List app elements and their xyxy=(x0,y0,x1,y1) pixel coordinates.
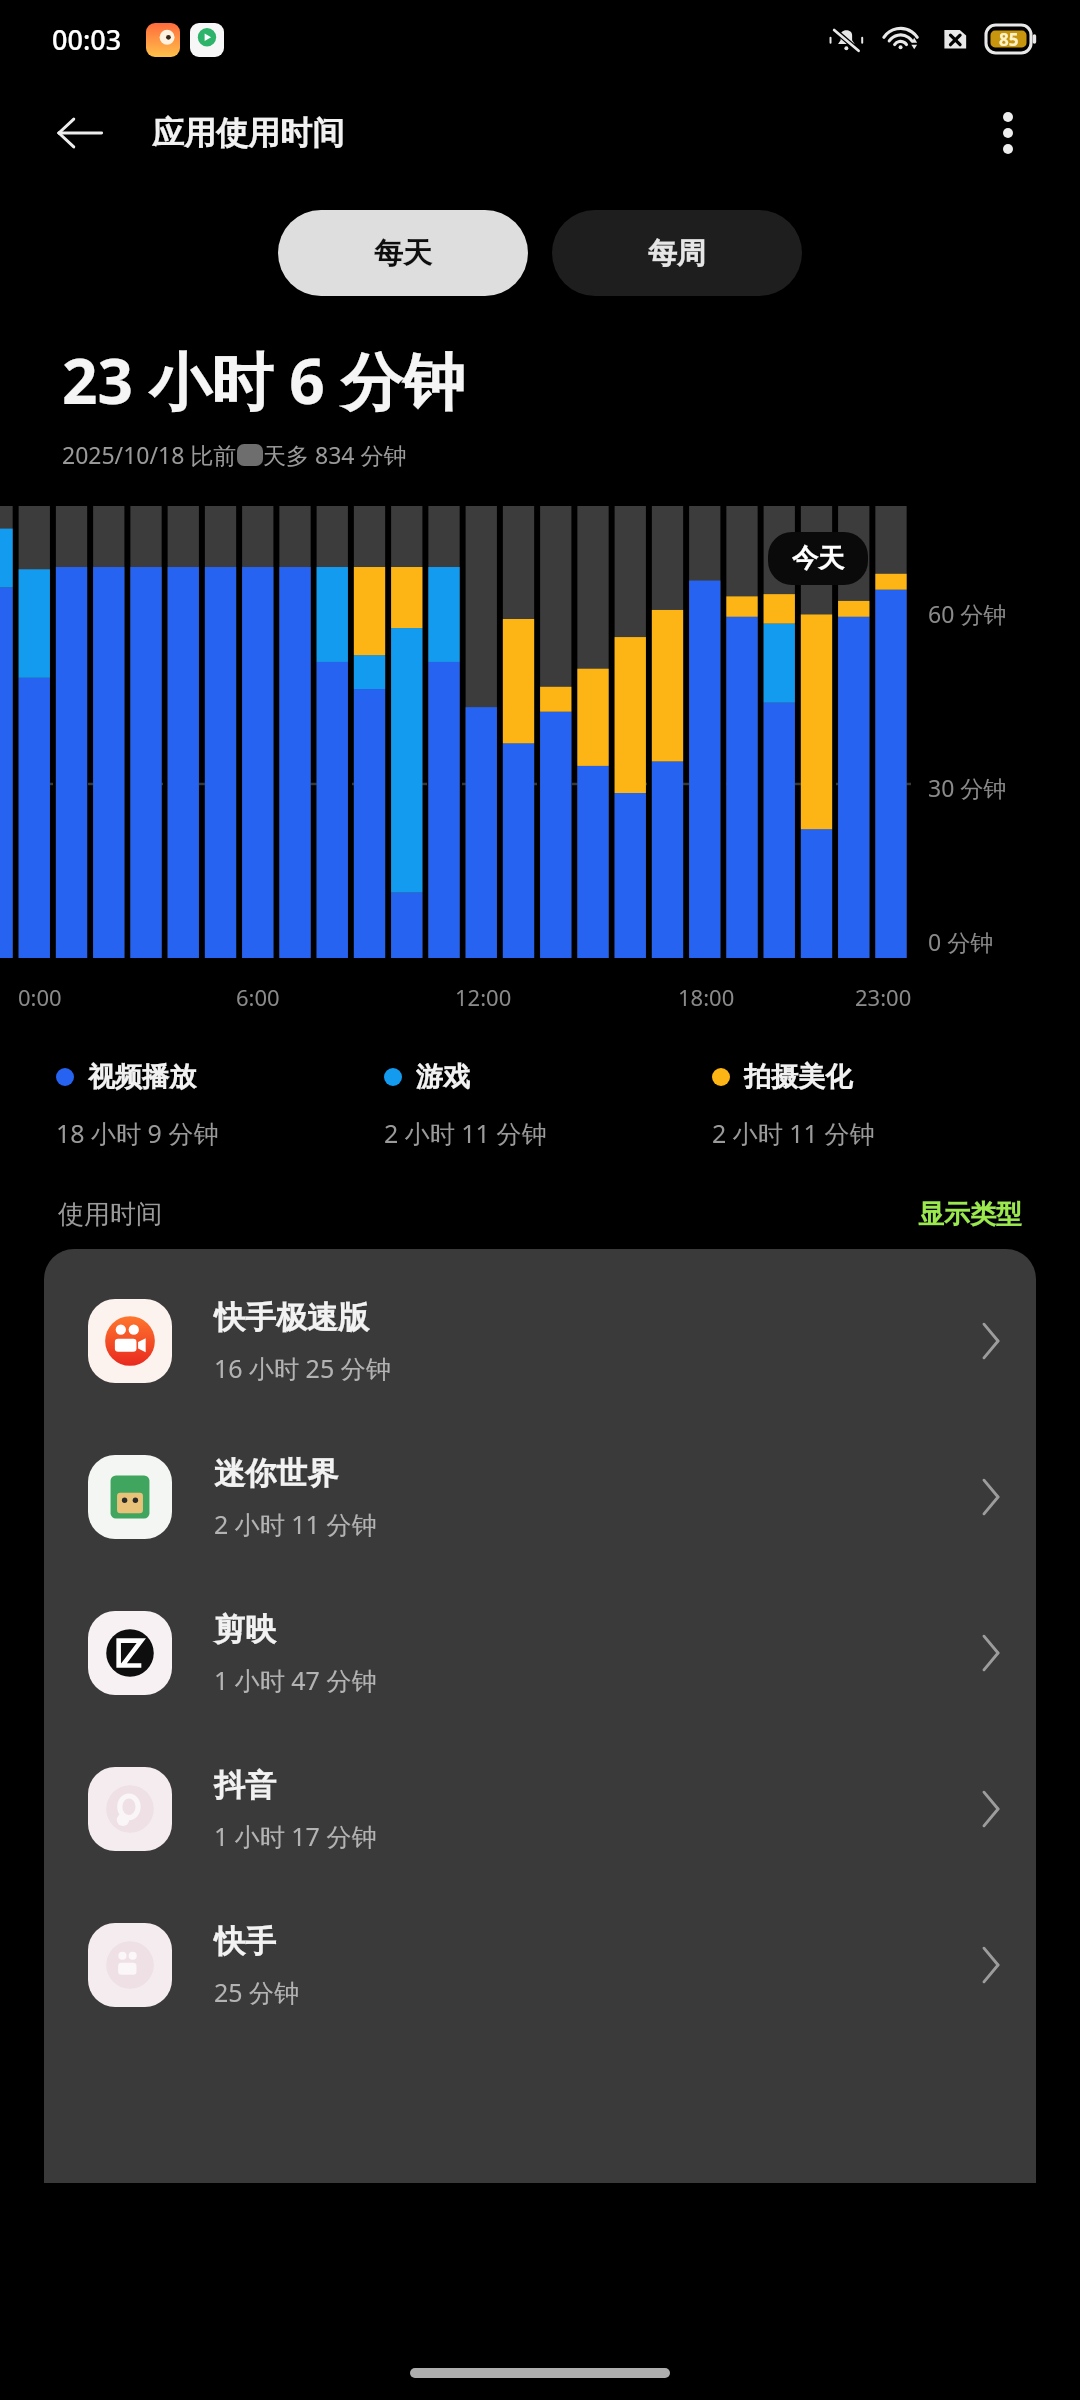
button[interactable]: 快手 xyxy=(44,1887,1036,2043)
staticText: 0:00 xyxy=(18,982,62,1012)
staticText: 0 分钟 xyxy=(928,926,994,957)
button[interactable]: 每天 xyxy=(278,210,528,296)
staticText: 2025/10/18 比前 xyxy=(62,439,237,470)
staticText: 2 小时 11 分钟 xyxy=(384,1116,547,1150)
staticText: 2 小时 11 分钟 xyxy=(712,1116,875,1150)
button[interactable]: 显示类型 xyxy=(918,1198,1022,1231)
staticText: 60 分钟 xyxy=(928,598,1007,629)
staticText: 应用使用时间 xyxy=(152,113,344,153)
staticText: 1 小时 17 分钟 xyxy=(214,1819,377,1853)
staticText: 1 小时 47 分钟 xyxy=(214,1663,377,1697)
button[interactable]: 每周 xyxy=(552,210,802,296)
staticText: 天多 834 分钟 xyxy=(263,439,407,470)
staticText: 迷你世界 xyxy=(214,1454,338,1493)
staticText: 每天 xyxy=(374,235,432,272)
staticText: 18:00 xyxy=(678,982,735,1012)
staticText: 快手 xyxy=(214,1922,276,1961)
staticText: 2 小时 11 分钟 xyxy=(214,1507,377,1541)
staticText: 18 小时 9 分钟 xyxy=(56,1116,219,1150)
staticText: 今天 xyxy=(792,542,844,575)
staticText: 抖音 xyxy=(214,1766,276,1805)
staticText: 每周 xyxy=(648,235,706,272)
staticText: 6:00 xyxy=(236,982,280,1012)
staticText: 25 分钟 xyxy=(214,1975,300,2009)
staticText: 游戏 xyxy=(416,1060,470,1094)
staticText: 23 小时 6 分钟 xyxy=(62,338,465,423)
staticText: 30 分钟 xyxy=(928,772,1007,803)
button[interactable]: 返回 xyxy=(34,87,126,179)
staticText: 视频播放 xyxy=(88,1060,196,1094)
staticText: 快手极速版 xyxy=(214,1298,369,1337)
button[interactable]: 抖音 xyxy=(44,1731,1036,1887)
button[interactable]: 更多选项 xyxy=(966,91,1050,175)
staticText: 00:03 xyxy=(52,21,122,58)
button[interactable]: 剪映 xyxy=(44,1575,1036,1731)
staticText: 16 小时 25 分钟 xyxy=(214,1351,391,1385)
staticText: 85 xyxy=(999,28,1019,51)
button[interactable]: 快手极速版 xyxy=(44,1263,1036,1419)
button[interactable]: 迷你世界 xyxy=(44,1419,1036,1575)
staticText: 显示类型 xyxy=(918,1198,1022,1231)
staticText: 23:00 xyxy=(855,982,912,1012)
staticText: 拍摄美化 xyxy=(744,1060,852,1094)
staticText: 使用时间 xyxy=(58,1198,162,1231)
staticText: 12:00 xyxy=(455,982,512,1012)
staticText: 剪映 xyxy=(214,1610,276,1649)
